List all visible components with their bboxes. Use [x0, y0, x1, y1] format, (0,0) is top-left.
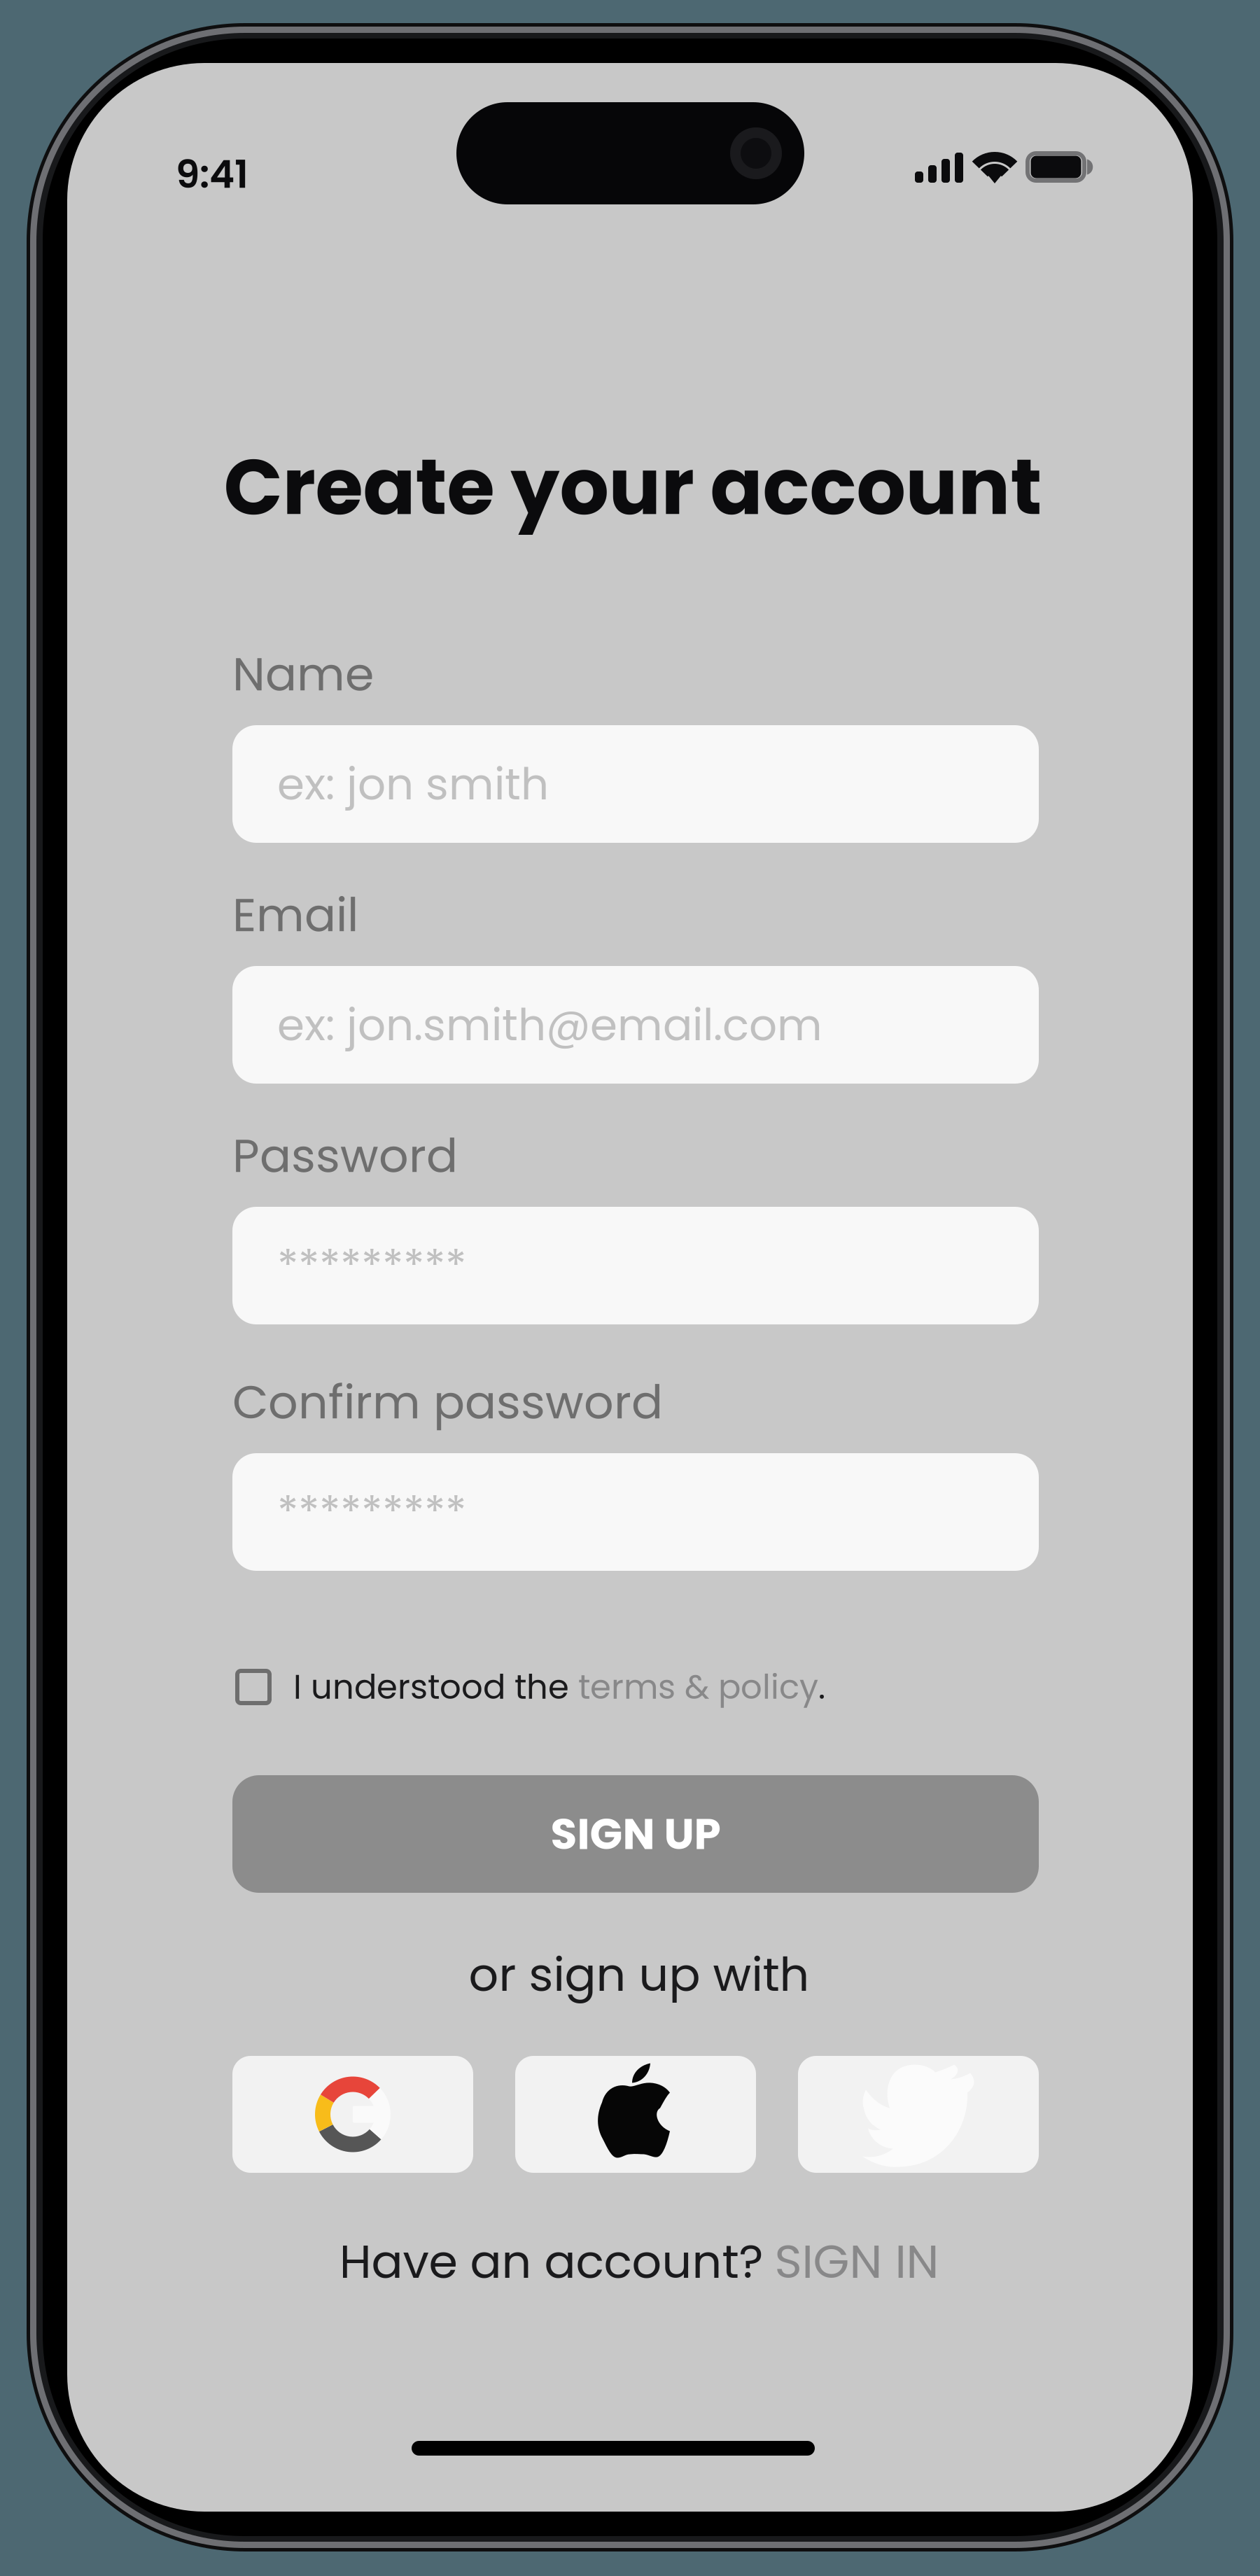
button[interactable]: Have an account? — [339, 2229, 939, 2294]
button[interactable]: SIGN UP — [232, 1775, 1039, 1893]
staticText: terms & policy — [578, 1663, 818, 1711]
button[interactable]: ex: jon.smith@email.com — [232, 966, 1039, 1084]
button[interactable]: ex: jon smith — [232, 725, 1039, 843]
button[interactable]: ********* — [232, 1453, 1039, 1571]
staticText: I understood the — [293, 1663, 578, 1711]
staticText: ********* — [277, 1481, 466, 1543]
button[interactable]: Sign up with Twitter — [798, 2056, 1039, 2173]
button[interactable]: Sign up with Google — [232, 2056, 473, 2173]
staticText: Email — [232, 882, 358, 948]
staticText: ********* — [277, 1235, 466, 1296]
staticText: SIGN IN — [775, 2229, 939, 2294]
staticText: . — [818, 1663, 825, 1711]
staticText: or sign up with — [469, 1942, 810, 2007]
staticText: SIGN UP — [551, 1804, 721, 1864]
button[interactable]: ********* — [232, 1207, 1039, 1324]
staticText: ex: jon smith — [277, 753, 549, 815]
staticText: Confirm password — [232, 1369, 663, 1435]
staticText: Password — [232, 1123, 458, 1188]
staticText: 9:41 — [176, 147, 248, 201]
staticText: Have an account? — [339, 2229, 763, 2294]
button[interactable]: Sign up with Apple — [515, 2056, 756, 2173]
button[interactable]: I understood the — [235, 1660, 1042, 1714]
staticText: Name — [232, 641, 374, 707]
staticText: Create your account — [224, 433, 1042, 541]
staticText: ex: jon.smith@email.com — [277, 994, 822, 1055]
